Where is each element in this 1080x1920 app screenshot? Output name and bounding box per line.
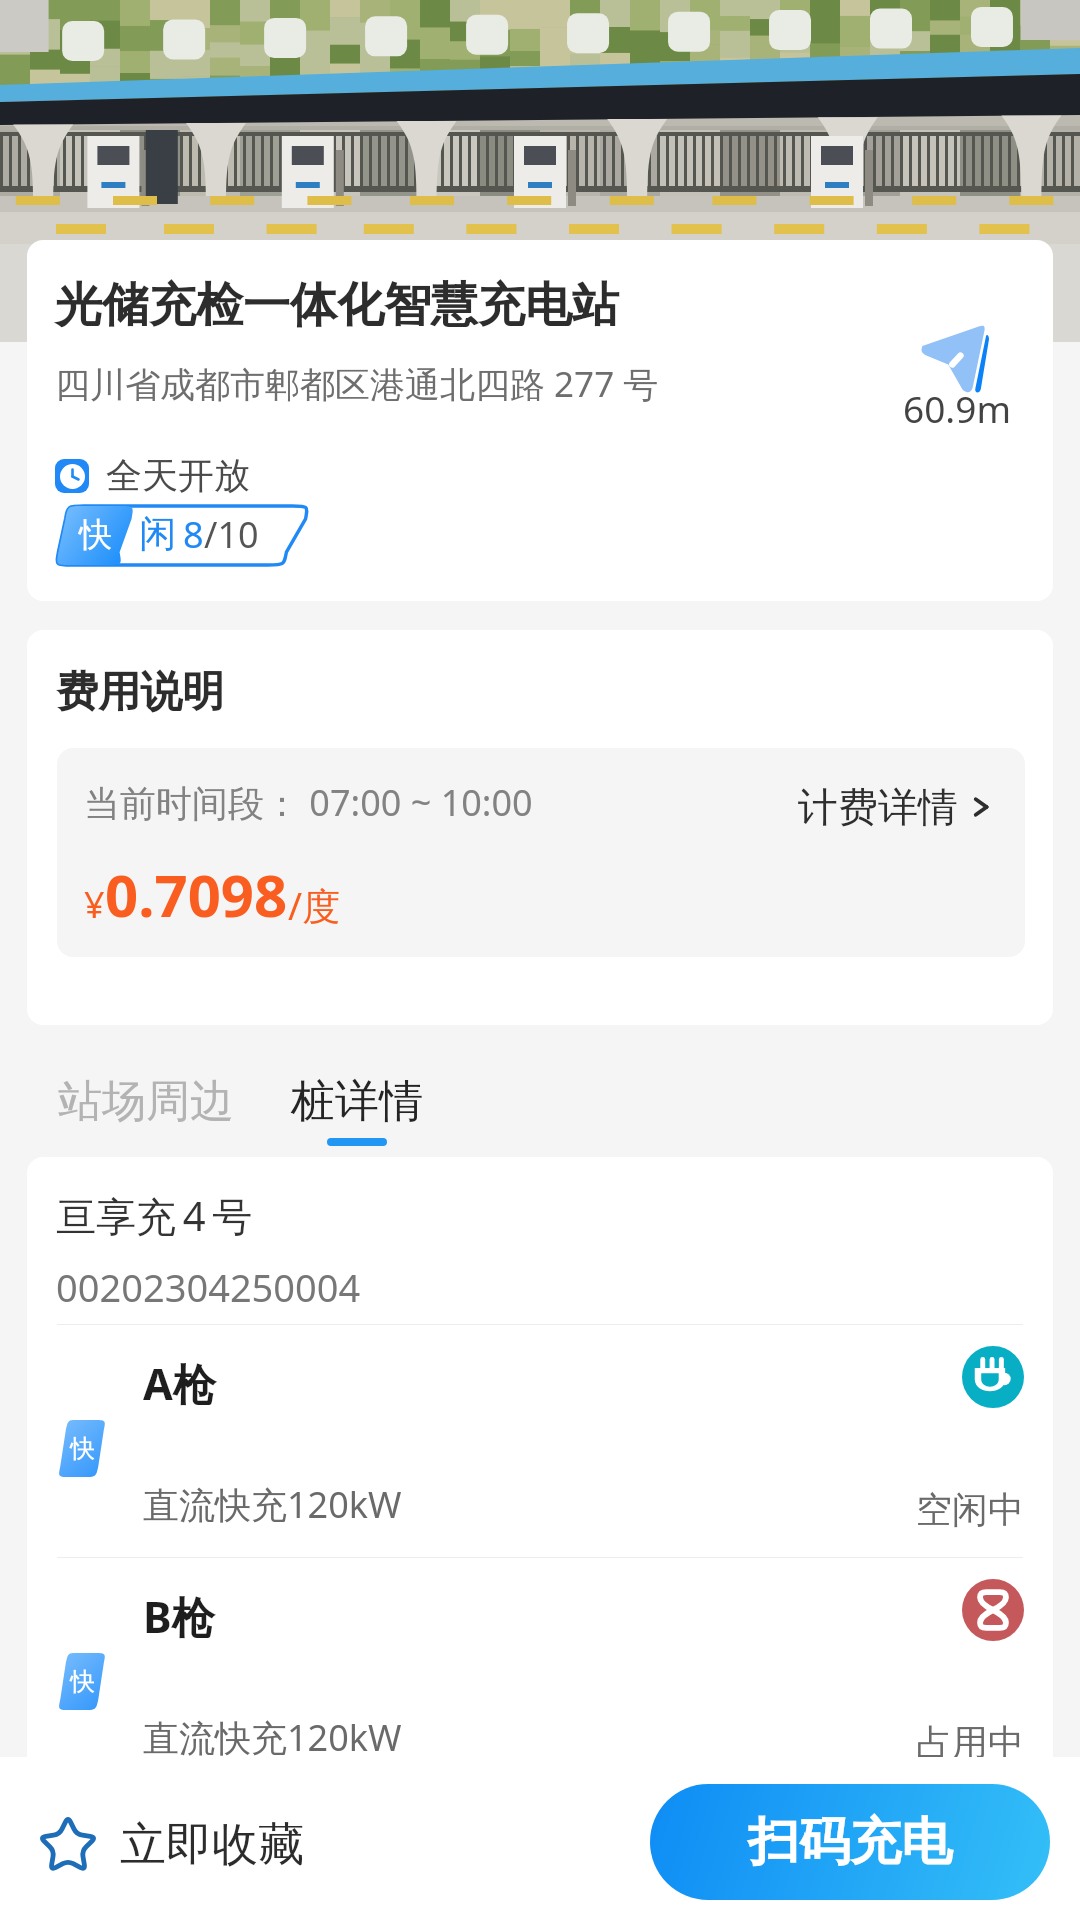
button[interactable]: A枪 — [27, 1325, 1053, 1557]
staticText: 费用说明 — [56, 666, 224, 719]
staticText: 60.9m — [903, 383, 1012, 433]
staticText: 扫码充电 — [748, 1810, 952, 1874]
staticText: 站场周边 — [58, 1074, 234, 1129]
button[interactable]: 光储充检一体化智慧充电站 — [27, 240, 1053, 601]
staticText: 闲 — [139, 510, 176, 557]
button[interactable]: 立即收藏 — [0, 1799, 328, 1891]
staticText: 快 — [79, 514, 112, 556]
other: In use — [962, 1579, 1024, 1641]
staticText: 计费详情 — [798, 782, 958, 832]
staticText: A枪 — [143, 1354, 216, 1413]
staticText: 8 — [183, 510, 204, 559]
staticText: 四川省成都市郫都区港通北四路 277 号 — [55, 360, 659, 408]
staticText: 快 — [70, 1666, 95, 1697]
staticText: 立即收藏 — [120, 1816, 304, 1874]
button[interactable]: B枪 — [27, 1558, 1053, 1790]
button[interactable]: 站场周边 — [58, 1070, 234, 1133]
staticText: 0.7098 — [105, 855, 288, 934]
staticText: /度 — [288, 879, 341, 931]
staticText: 直流快充120kW — [143, 1713, 402, 1762]
other: Available — [962, 1346, 1024, 1408]
staticText: 空闲中 — [916, 1487, 1024, 1532]
staticText: 光储充检一体化智慧充电站 — [55, 276, 619, 335]
staticText: 00202304250004 — [56, 1261, 361, 1313]
button[interactable]: 桩详情 — [291, 1070, 423, 1146]
button[interactable]: Navigate — [897, 318, 1045, 438]
staticText: B枪 — [143, 1587, 215, 1646]
staticText: ¥ — [84, 880, 105, 929]
button[interactable]: 计费详情 — [798, 782, 995, 832]
staticText: /10 — [204, 510, 259, 559]
button[interactable]: 扫码充电 — [650, 1784, 1050, 1900]
staticText: 桩详情 — [291, 1074, 423, 1129]
staticText: 占用中 — [916, 1720, 1024, 1765]
staticText: 全天开放 — [106, 453, 250, 498]
staticText: 直流快充120kW — [143, 1480, 402, 1529]
staticText: 当前时间段： 07:00 ~ 10:00 — [84, 778, 533, 827]
staticText: 亘享充 4 号 — [56, 1188, 253, 1243]
staticText: 快 — [70, 1433, 95, 1464]
